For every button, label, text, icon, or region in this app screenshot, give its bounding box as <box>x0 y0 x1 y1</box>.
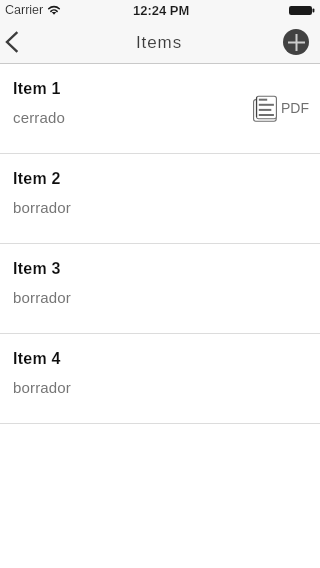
button[interactable]: Item 3 <box>0 244 320 334</box>
staticText: Item 3 <box>13 260 61 278</box>
staticText: Item 4 <box>13 350 61 368</box>
staticText: PDF <box>281 100 309 116</box>
button[interactable]: Item 1 <box>0 64 320 154</box>
button[interactable]: PDF <box>248 88 312 128</box>
staticText: Items <box>136 33 183 52</box>
staticText: cerrado <box>13 109 65 126</box>
staticText: Item 1 <box>13 80 61 98</box>
staticText: 12:24 PM <box>133 3 190 18</box>
staticText: borrador <box>13 289 71 306</box>
button[interactable]: Add <box>283 29 309 55</box>
button[interactable]: Item 2 <box>0 154 320 244</box>
staticText: Item 2 <box>13 170 61 188</box>
button[interactable]: Back <box>0 20 44 64</box>
staticText: Carrier <box>5 3 44 17</box>
staticText: borrador <box>13 199 71 216</box>
button[interactable]: Item 4 <box>0 334 320 424</box>
staticText: borrador <box>13 379 71 396</box>
